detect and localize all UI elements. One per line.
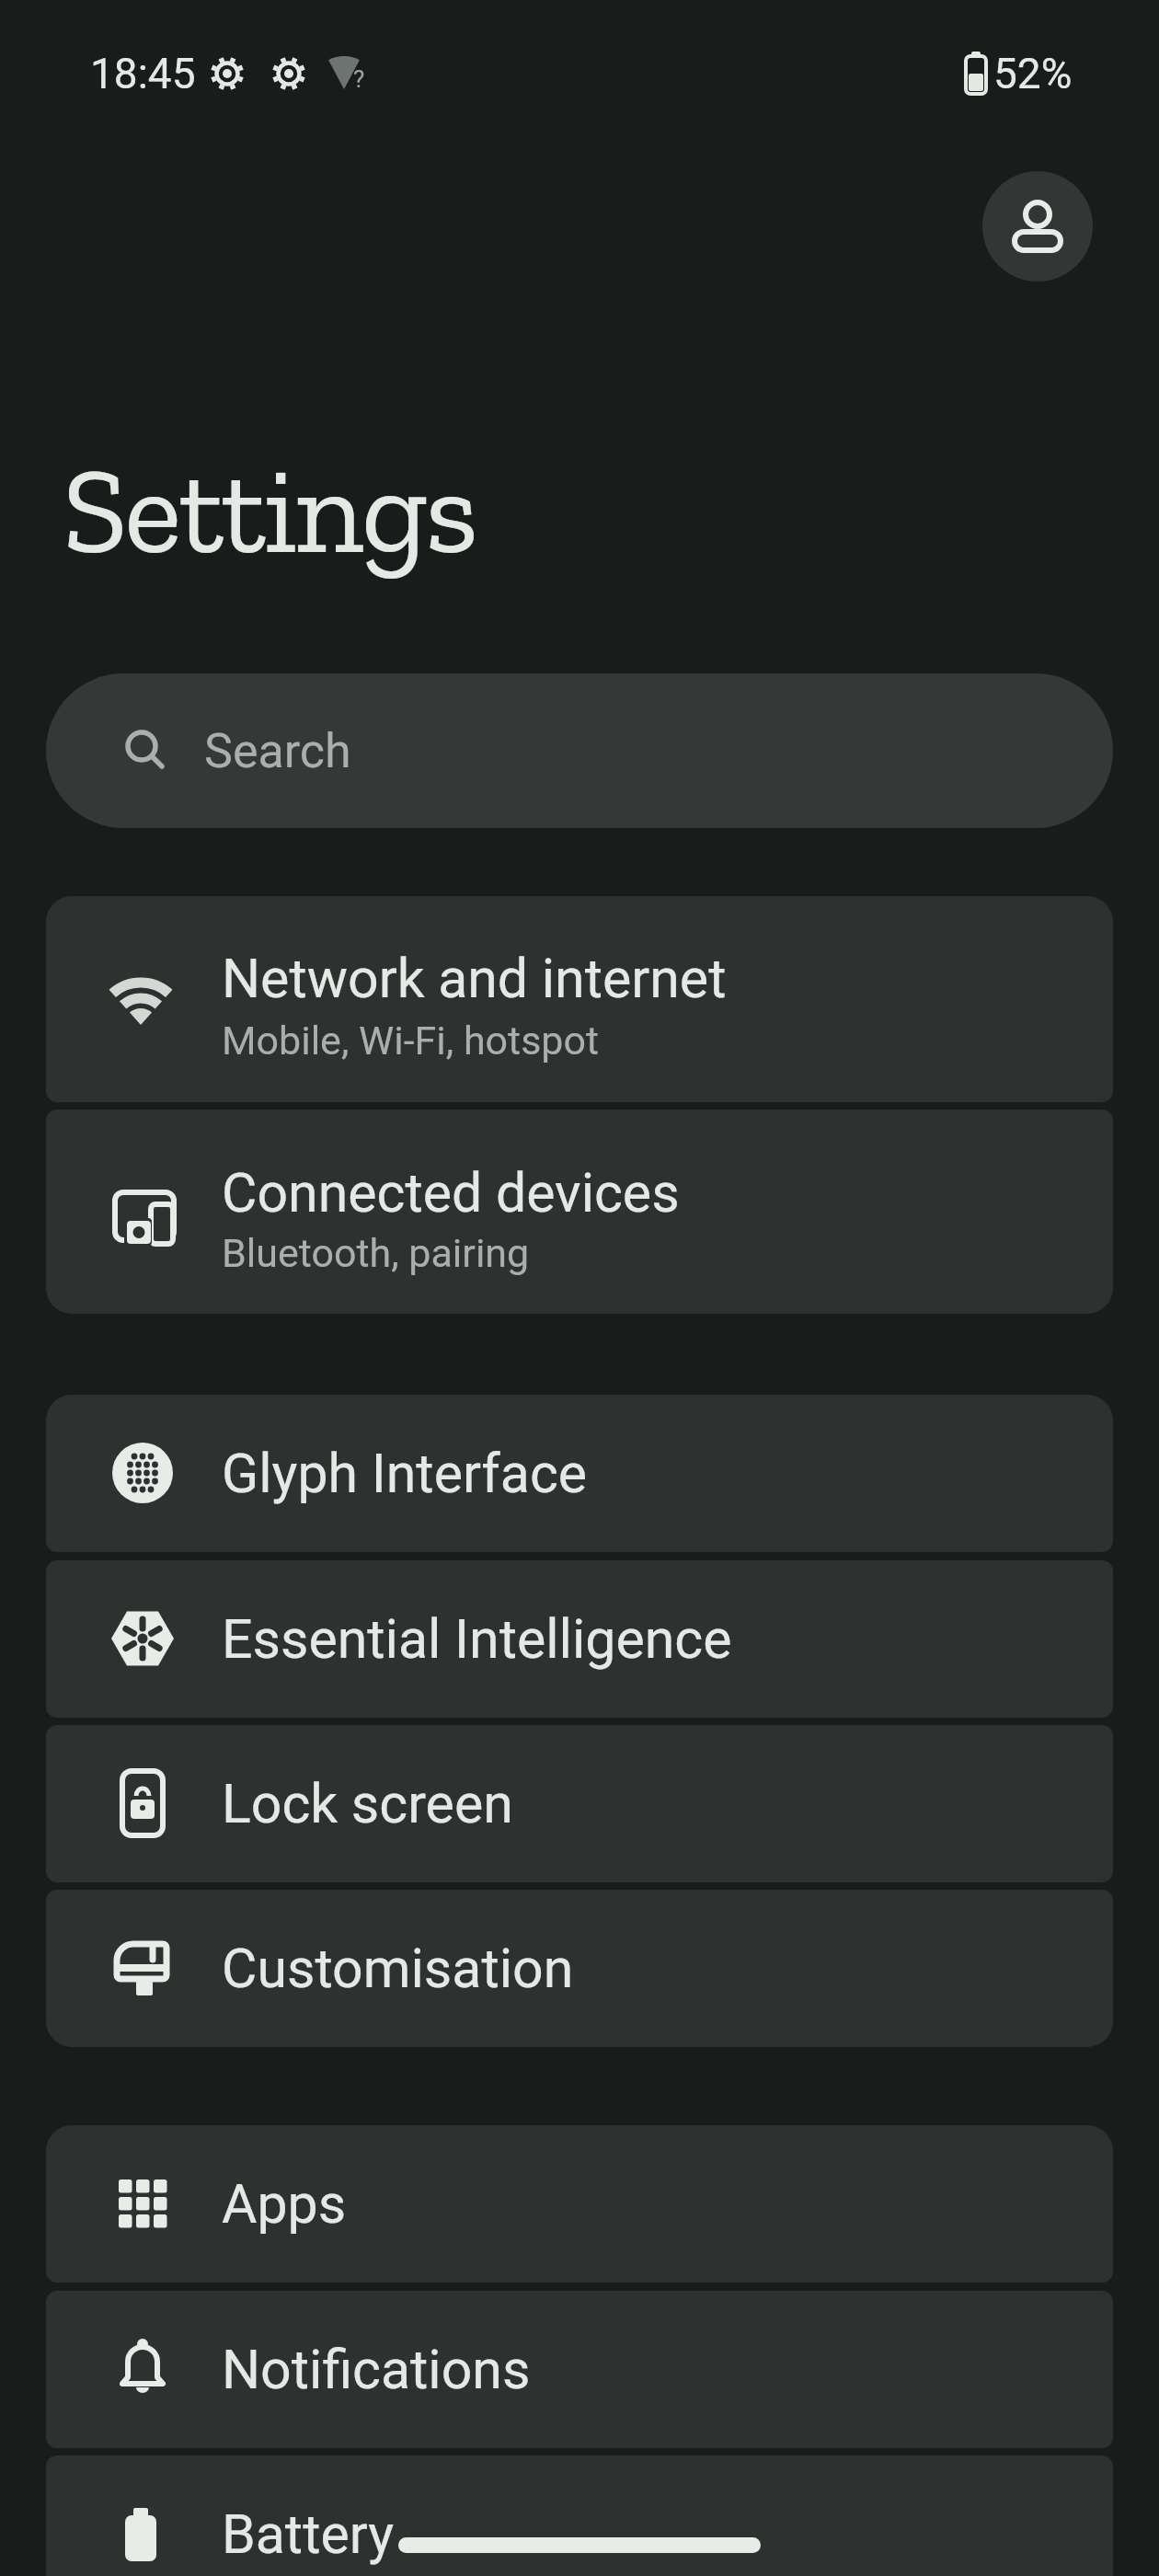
button[interactable] (46, 2455, 1113, 2576)
button[interactable]: Connected devices (46, 1110, 1113, 1314)
staticText: Network and internet (222, 947, 727, 1010)
staticText: Notifications (222, 2338, 531, 2401)
staticText: Battery (222, 2502, 395, 2566)
button[interactable] (46, 1395, 1113, 1552)
staticText: Mobile, Wi-Fi, hotspot (222, 1018, 600, 1064)
staticText: Customisation (222, 1937, 574, 2000)
staticText: 18:45 (90, 49, 196, 98)
staticText: Glyph Interface (222, 1442, 588, 1505)
staticText: Essential Intelligence (222, 1607, 732, 1671)
button[interactable]: Search (46, 673, 1113, 828)
button[interactable] (46, 2125, 1113, 2283)
button[interactable]: Network and internet (46, 896, 1113, 1102)
staticText: Lock screen (222, 1772, 513, 1835)
staticText: Apps (222, 2172, 347, 2236)
button[interactable] (982, 171, 1093, 282)
staticText: Bluetooth, pairing (222, 1230, 530, 1276)
button[interactable] (46, 1890, 1113, 2047)
staticText: Settings (63, 437, 476, 582)
button[interactable] (46, 1725, 1113, 1882)
button[interactable] (46, 1560, 1113, 1718)
staticText: Search (204, 723, 351, 779)
staticText: 52% (993, 49, 1073, 98)
staticText: Connected devices (222, 1161, 680, 1225)
staticText: ? (353, 65, 365, 93)
button[interactable] (46, 2291, 1113, 2448)
